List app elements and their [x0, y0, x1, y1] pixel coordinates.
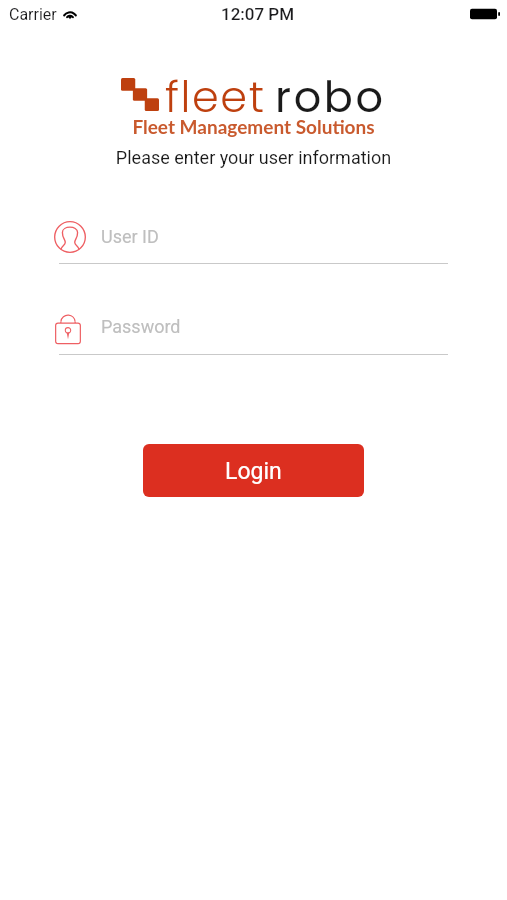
other: Password	[55, 313, 81, 344]
staticText: Please enter your user information	[0, 147, 507, 168]
staticText: Login	[225, 458, 282, 485]
staticText: Fleet Management Solutions	[0, 115, 507, 138]
button[interactable]: Password	[55, 300, 448, 362]
staticText: User ID	[101, 226, 159, 247]
button[interactable]: Login	[143, 444, 364, 497]
other: User	[54, 221, 86, 253]
staticText: robo	[275, 67, 386, 127]
button[interactable]: User	[55, 210, 448, 271]
staticText: 12:07 PM	[221, 4, 295, 24]
staticText: Carrier	[9, 5, 57, 24]
staticText: fleet	[165, 67, 266, 127]
staticText: Password	[101, 316, 181, 337]
